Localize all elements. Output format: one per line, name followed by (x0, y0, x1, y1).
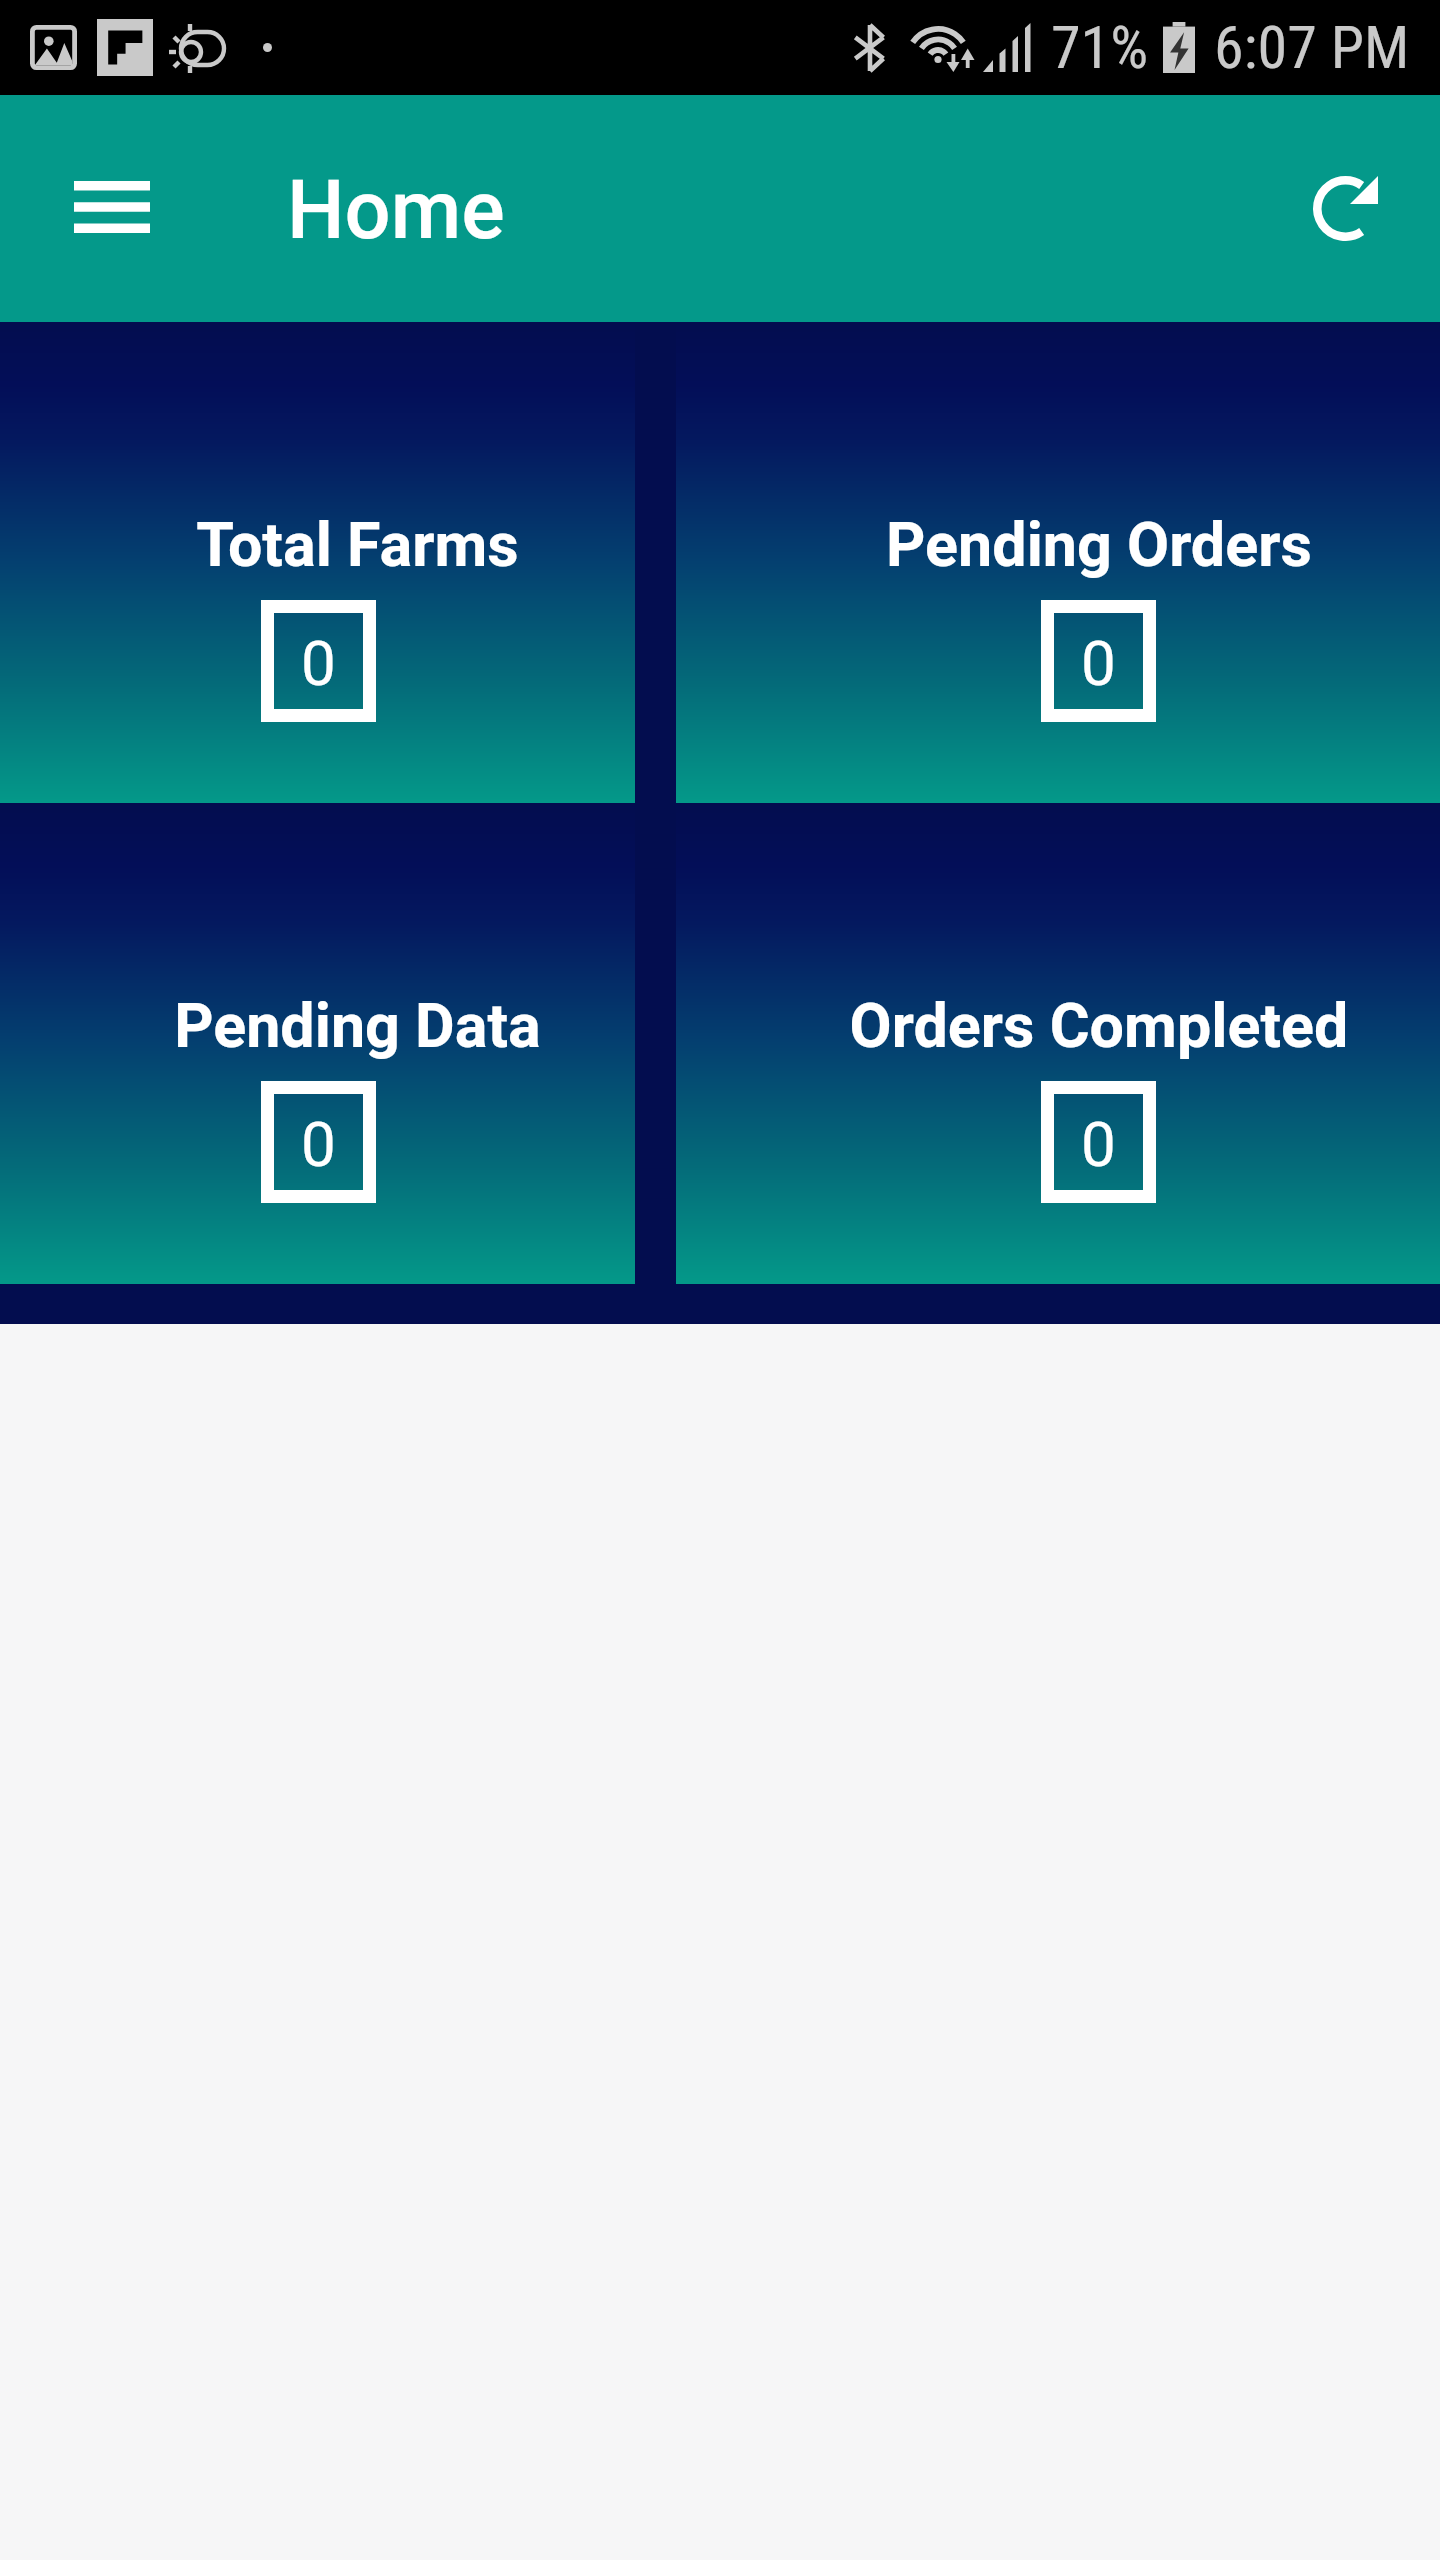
button[interactable]: Open navigation drawer (18, 93, 206, 320)
staticText: Total Farms (40, 509, 675, 580)
staticText: 71% (1051, 12, 1149, 82)
button[interactable]: Pending Orders (676, 322, 1440, 803)
staticText: Pending Orders (717, 509, 1440, 580)
staticText: 6:07 PM (1214, 12, 1410, 82)
button[interactable]: Total Farms (0, 322, 635, 803)
staticText: 0 (1081, 627, 1116, 700)
staticText: Home (287, 163, 505, 258)
staticText: 0 (301, 1108, 336, 1181)
staticText: 0 (301, 627, 336, 700)
button[interactable]: Pending Data (0, 803, 635, 1284)
staticText: Orders Completed (717, 990, 1440, 1061)
staticText: 0 (1081, 1108, 1116, 1181)
button[interactable]: Orders Completed (676, 803, 1440, 1284)
button[interactable]: Refresh (1280, 95, 1410, 322)
staticText: Pending Data (40, 990, 675, 1061)
